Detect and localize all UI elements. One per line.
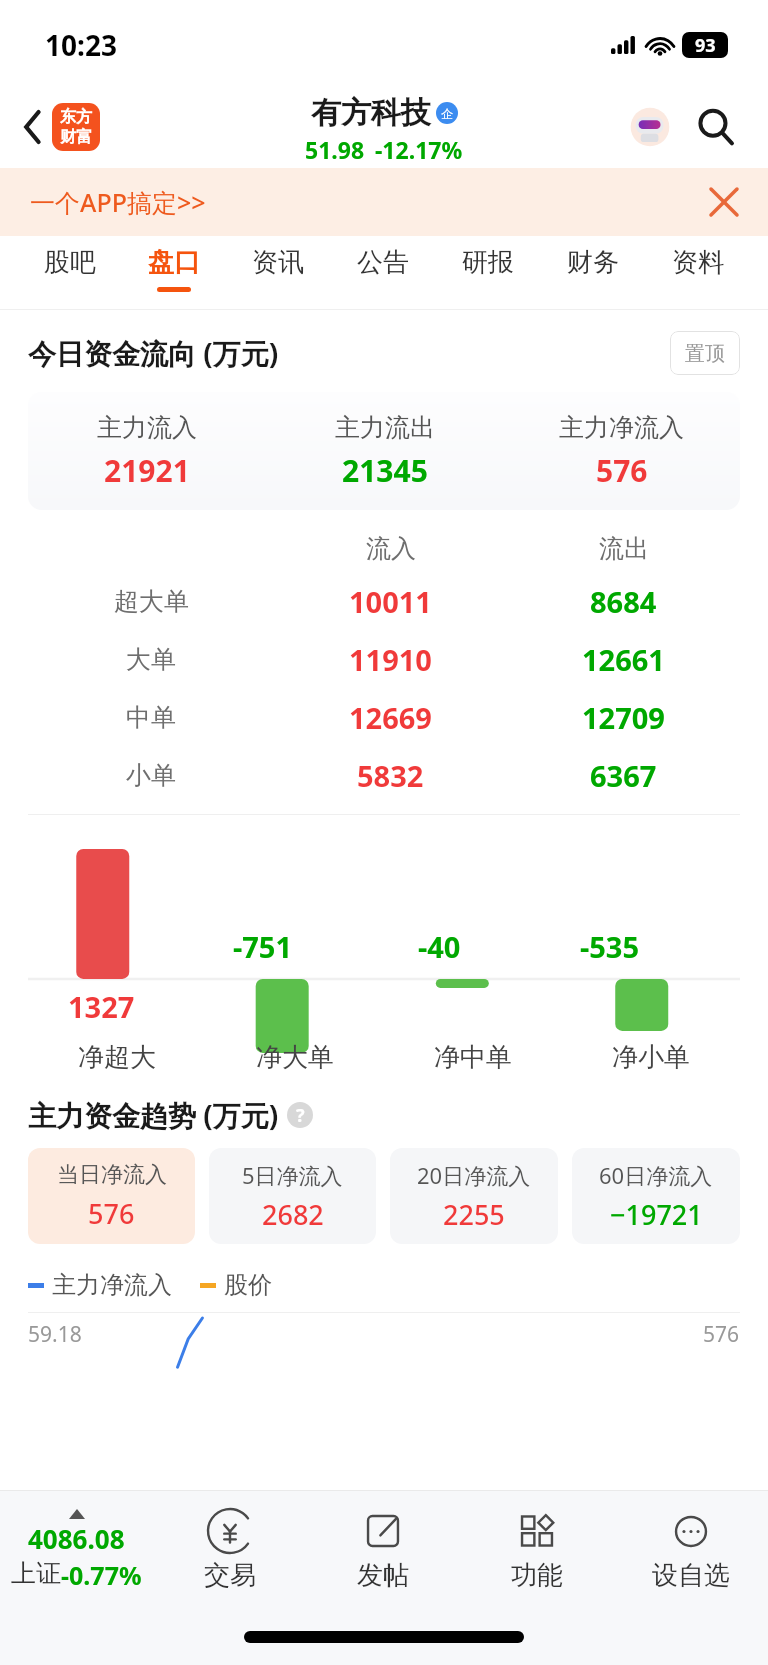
- staticText: 主力资金趋势 (万元): [28, 1096, 279, 1134]
- staticText: 公告: [357, 246, 409, 279]
- button[interactable]: 5日净流入: [209, 1148, 376, 1244]
- staticText: -12.17%: [375, 134, 463, 165]
- button[interactable]: 60日净流入: [572, 1148, 740, 1244]
- staticText: ?: [296, 1103, 305, 1128]
- button[interactable]: 一个APP搞定>>: [0, 168, 768, 236]
- staticText: 20日净流入: [417, 1160, 531, 1190]
- staticText: 净中单: [434, 1041, 512, 1074]
- staticText: 11910: [349, 640, 432, 679]
- staticText: 上证: [11, 1558, 61, 1589]
- staticText: 12709: [582, 698, 665, 737]
- staticText: 净超大: [78, 1041, 156, 1074]
- button[interactable]: 财务: [540, 236, 645, 310]
- button[interactable]: 资料: [645, 236, 750, 310]
- staticText: 财富: [60, 127, 92, 147]
- staticText: 60日净流入: [599, 1160, 713, 1190]
- staticText: 21921: [104, 450, 190, 491]
- button[interactable]: 功能: [460, 1491, 614, 1609]
- staticText: 51.98: [305, 134, 365, 165]
- staticText: 净大单: [256, 1041, 334, 1074]
- staticText: 576: [88, 1195, 135, 1232]
- staticText: 21345: [342, 450, 428, 491]
- staticText: 一个APP搞定>>: [30, 185, 206, 219]
- staticText: 当日净流入: [57, 1161, 167, 1189]
- button[interactable]: Help: [287, 1102, 313, 1128]
- staticText: 大单: [126, 644, 176, 675]
- staticText: 576: [703, 1320, 740, 1349]
- staticText: 93: [695, 33, 716, 58]
- staticText: −19721: [610, 1196, 703, 1233]
- button[interactable]: 4086.08: [0, 1491, 153, 1609]
- staticText: 主力流出: [335, 412, 435, 443]
- staticText: 2255: [443, 1196, 505, 1233]
- staticText: 小单: [126, 760, 176, 791]
- button[interactable]: 股吧: [18, 236, 122, 310]
- button[interactable]: 20日净流入: [390, 1148, 558, 1244]
- staticText: 12669: [349, 698, 432, 737]
- staticText: 流出: [599, 533, 649, 564]
- staticText: -40: [418, 927, 461, 966]
- staticText: 流入: [366, 533, 416, 564]
- staticText: 超大单: [114, 586, 189, 617]
- staticText: 6367: [590, 756, 657, 795]
- staticText: -0.77%: [61, 1558, 142, 1592]
- button[interactable]: 公告: [330, 236, 435, 310]
- staticText: 10:23: [45, 26, 117, 64]
- staticText: 发帖: [357, 1559, 409, 1592]
- staticText: 盘口: [148, 246, 200, 279]
- staticText: 东方: [60, 107, 92, 127]
- staticText: 净小单: [612, 1041, 690, 1074]
- staticText: 5832: [357, 756, 424, 795]
- button[interactable]: 主力流入: [28, 392, 740, 510]
- button[interactable]: 设自选: [614, 1491, 768, 1609]
- button[interactable]: 研报: [435, 236, 540, 310]
- staticText: 置顶: [685, 341, 725, 366]
- button[interactable]: Close banner: [702, 180, 746, 224]
- staticText: 股价: [224, 1270, 272, 1300]
- staticText: 资料: [672, 246, 724, 279]
- staticText: 1327: [68, 987, 135, 1026]
- button[interactable]: 盘口: [122, 236, 226, 310]
- staticText: 12661: [582, 640, 665, 679]
- staticText: 4086.08: [28, 1521, 125, 1556]
- staticText: 资讯: [252, 246, 304, 279]
- staticText: 功能: [511, 1559, 563, 1592]
- button[interactable]: AI assistant: [624, 101, 676, 153]
- button[interactable]: Search: [688, 99, 744, 155]
- staticText: 主力净流入: [559, 412, 684, 443]
- staticText: 10011: [349, 582, 432, 621]
- staticText: 企: [441, 106, 453, 121]
- staticText: 设自选: [652, 1559, 730, 1592]
- staticText: 主力净流入: [52, 1270, 172, 1300]
- staticText: -751: [233, 927, 293, 966]
- button[interactable]: 资讯: [226, 236, 330, 310]
- staticText: 576: [596, 450, 648, 491]
- button[interactable]: 置顶: [670, 331, 740, 375]
- button[interactable]: 交易: [153, 1491, 306, 1609]
- staticText: 59.18: [28, 1320, 82, 1349]
- staticText: 财务: [567, 246, 619, 279]
- staticText: 股吧: [44, 246, 96, 279]
- button[interactable]: 当日净流入: [28, 1148, 195, 1244]
- staticText: 中单: [126, 702, 176, 733]
- button[interactable]: 东方财富: [52, 103, 100, 151]
- staticText: 8684: [590, 582, 657, 621]
- staticText: 研报: [462, 246, 514, 279]
- staticText: 主力流入: [97, 412, 197, 443]
- staticText: 有方科技: [311, 94, 431, 132]
- staticText: 5日净流入: [242, 1160, 343, 1190]
- button[interactable]: Back: [12, 106, 54, 148]
- staticText: 交易: [204, 1559, 256, 1592]
- staticText: 2682: [262, 1196, 324, 1233]
- staticText: 今日资金流向 (万元): [28, 334, 279, 372]
- button[interactable]: 发帖: [306, 1491, 460, 1609]
- staticText: -535: [580, 927, 640, 966]
